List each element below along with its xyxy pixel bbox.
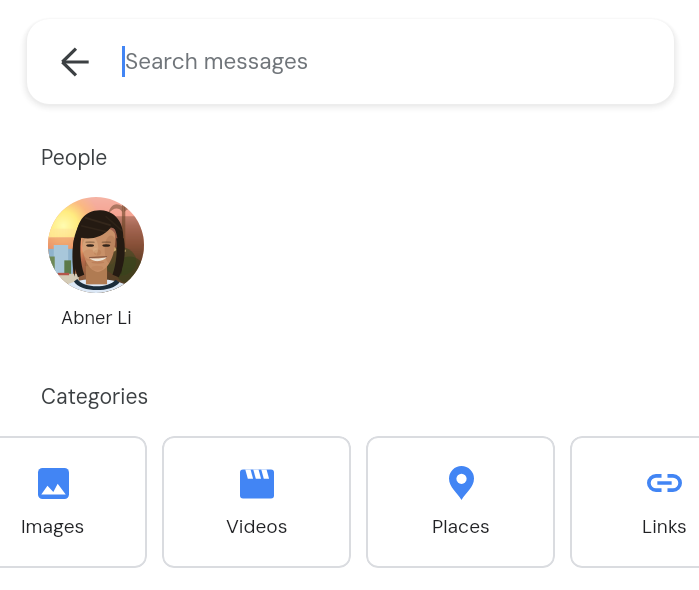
button[interactable]: Back [27, 19, 122, 104]
button[interactable]: Images [0, 436, 147, 568]
staticText: Search messages [125, 47, 309, 76]
staticText: Images [21, 514, 85, 539]
button[interactable]: Links [570, 436, 699, 568]
staticText: Categories [41, 383, 149, 411]
staticText: Abner Li [61, 306, 132, 330]
button[interactable]: Search messages [122, 19, 674, 104]
staticText: Places [432, 514, 490, 539]
staticText: Links [642, 514, 687, 539]
button[interactable]: Videos [162, 436, 351, 568]
button[interactable]: Places [366, 436, 555, 568]
staticText: Videos [226, 514, 288, 539]
staticText: People [41, 144, 108, 172]
button[interactable]: Abner Li [40, 197, 152, 330]
